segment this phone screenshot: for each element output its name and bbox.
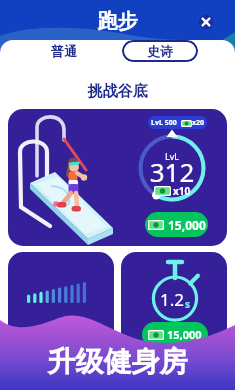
button[interactable]: 史诗 xyxy=(122,40,198,62)
staticText: LvL 500 xyxy=(151,118,177,128)
button[interactable]: LvL 500 xyxy=(148,116,207,129)
staticText: 挑战谷底 xyxy=(0,82,235,101)
button[interactable]: 15,000 xyxy=(145,212,208,237)
staticText: LvL xyxy=(152,150,192,162)
staticText: 普通 xyxy=(51,43,77,59)
staticText: x10 xyxy=(173,184,191,198)
button[interactable]: Close xyxy=(194,10,218,34)
staticText: 跑步 xyxy=(0,9,235,34)
staticText: 史诗 xyxy=(147,43,173,59)
staticText: x20 xyxy=(192,118,205,128)
button[interactable]: 15,000 xyxy=(142,322,208,347)
staticText: 升级健身房 xyxy=(0,344,235,379)
staticText: s xyxy=(185,297,191,311)
button[interactable]: LvL 500 xyxy=(8,109,227,246)
staticText: 15,000 xyxy=(167,327,202,342)
staticText: 15,000 xyxy=(168,217,206,233)
staticText: 1.2 xyxy=(160,288,185,311)
button[interactable] xyxy=(8,252,114,352)
button[interactable]: 1.2 xyxy=(121,252,227,352)
button[interactable]: 普通 xyxy=(26,40,102,62)
staticText: 312 xyxy=(142,154,202,189)
